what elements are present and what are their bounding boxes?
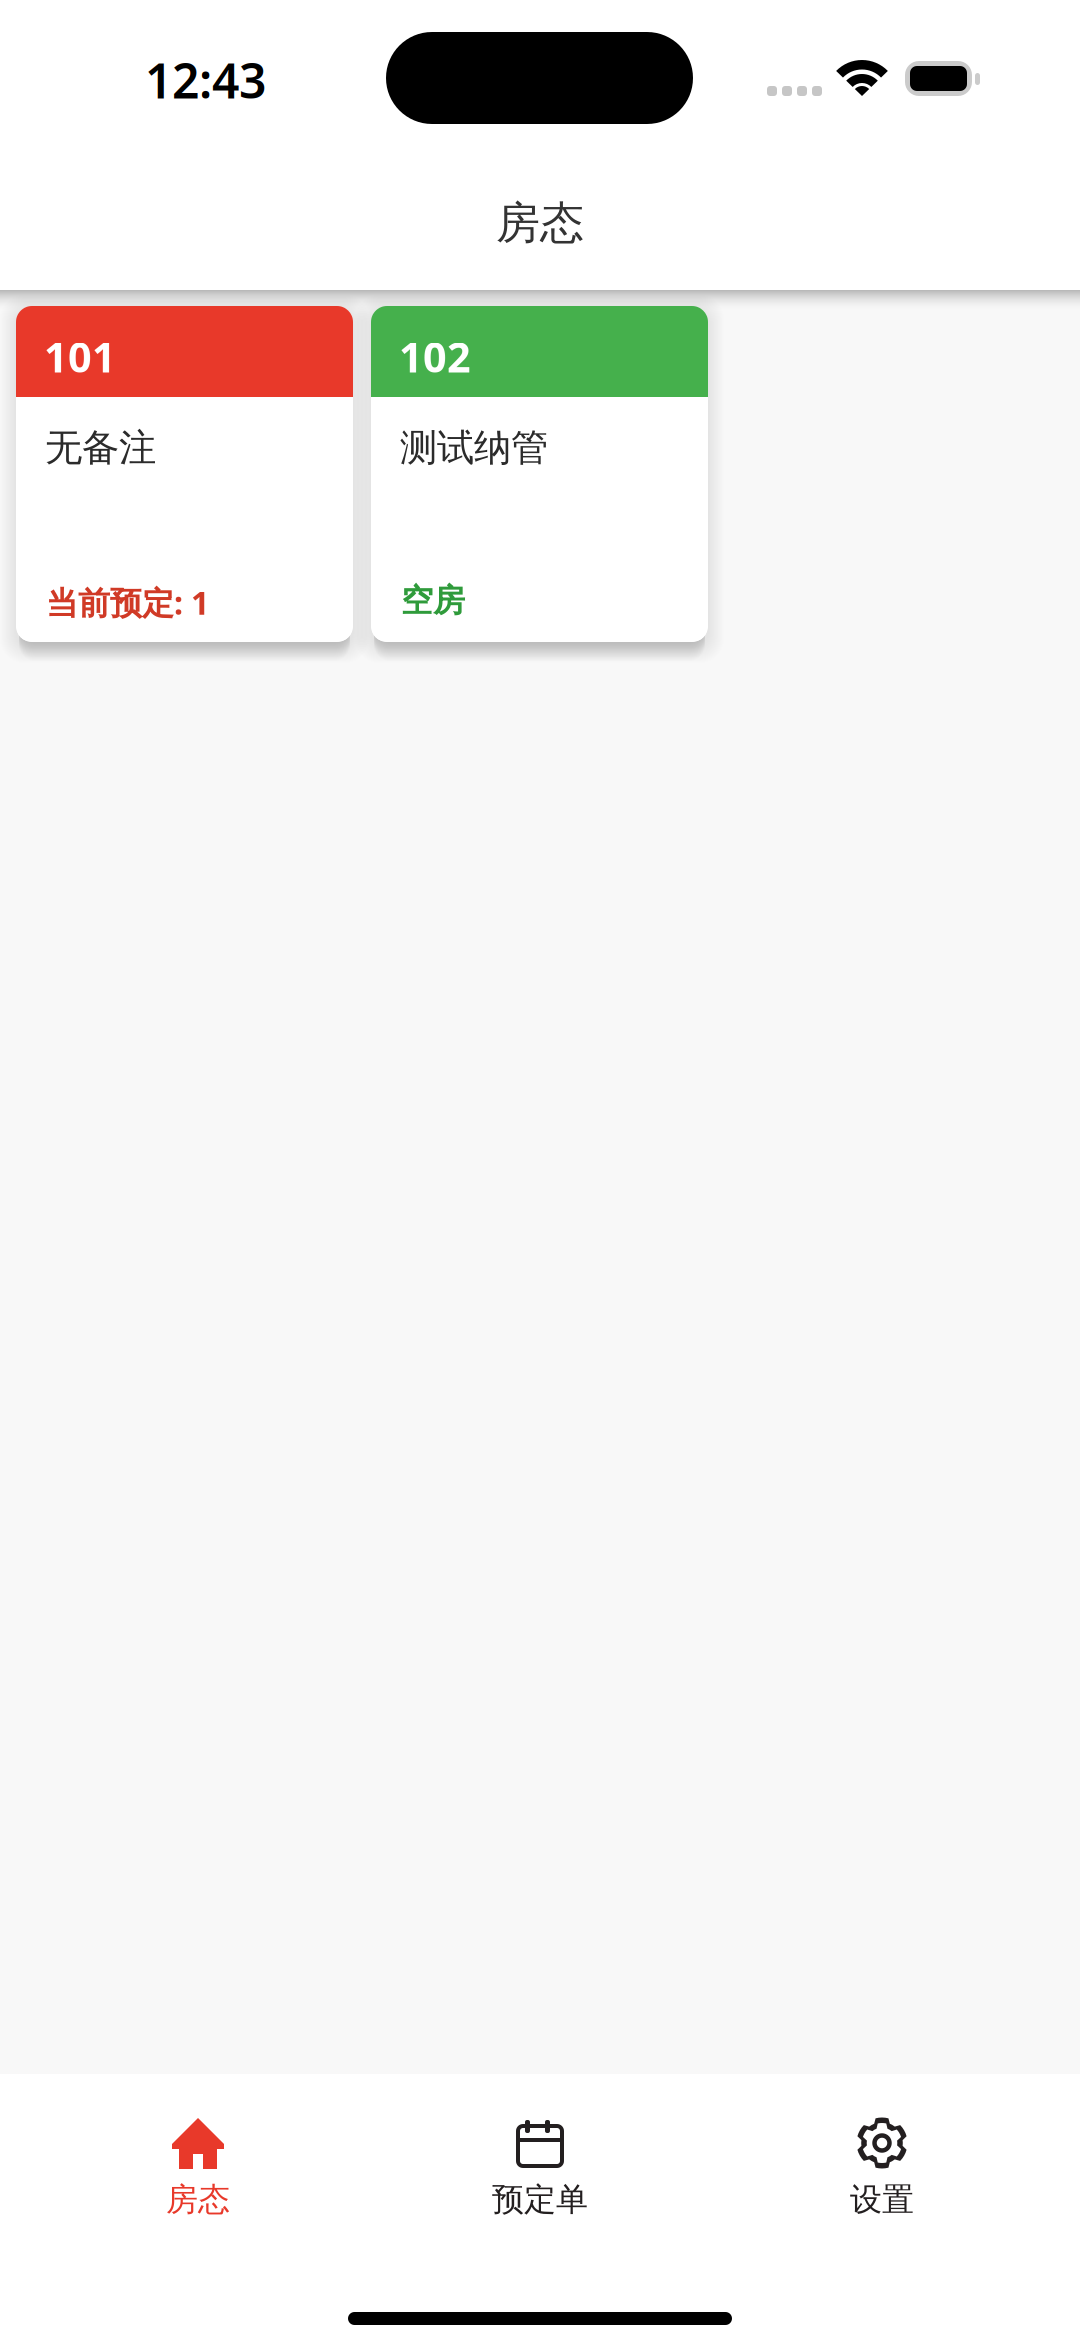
staticText: 无备注 [45,425,156,471]
button[interactable]: 房态 [27,2118,369,2278]
staticText: 房态 [496,196,584,250]
button[interactable]: 设置 [711,2118,1053,2278]
staticText: 102 [399,329,471,384]
staticText: 101 [44,329,116,384]
staticText: 空房 [401,581,465,620]
staticText: 房态 [166,2180,230,2219]
staticText: 预定单 [492,2180,588,2219]
button[interactable]: 101 [16,306,353,656]
staticText: 测试纳管 [400,425,548,471]
staticText: 12:43 [145,48,266,112]
staticText: 设置 [850,2180,914,2219]
staticText: 当前预定: 1 [46,581,209,623]
button[interactable]: 102 [371,306,708,656]
button[interactable]: 预定单 [369,2118,711,2278]
